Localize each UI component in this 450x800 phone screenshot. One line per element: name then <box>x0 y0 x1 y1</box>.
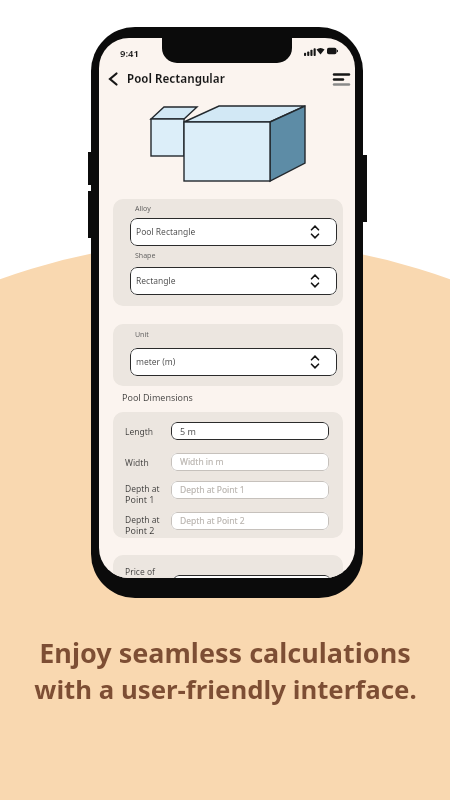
staticText: Pool Dimensions <box>122 391 193 403</box>
staticText: meter (m) <box>136 356 176 368</box>
staticText: with a user-friendly interface. <box>34 671 417 706</box>
staticText: Depth at <box>125 483 160 495</box>
staticText: Pool Rectangle <box>136 226 196 238</box>
staticText: 5 m <box>180 425 196 437</box>
button[interactable] <box>327 66 353 88</box>
button[interactable] <box>173 575 331 578</box>
staticText: Enjoy seamless calculations <box>39 634 411 671</box>
staticText: Width <box>125 457 149 469</box>
button[interactable]: meter (m) <box>130 348 337 376</box>
button[interactable] <box>103 66 125 88</box>
button[interactable]: Width in m <box>171 453 329 471</box>
staticText: Unit <box>135 330 149 340</box>
staticText: Price of <box>125 566 155 578</box>
staticText: Alloy <box>135 204 151 214</box>
staticText: Width in m <box>180 456 224 468</box>
button[interactable]: Pool Rectangular <box>127 71 225 87</box>
staticText: Depth at Point 1 <box>180 484 245 496</box>
staticText: Point 2 <box>125 524 155 536</box>
button[interactable]: Depth at Point 2 <box>171 512 329 530</box>
staticText: Depth at Point 2 <box>180 515 245 527</box>
staticText: Rectangle <box>136 275 176 287</box>
staticText: Point 1 <box>125 493 155 505</box>
staticText: Depth at <box>125 514 160 526</box>
button[interactable]: Depth at Point 1 <box>171 481 329 499</box>
staticText: Shape <box>135 251 156 261</box>
button[interactable]: Pool Rectangle <box>130 218 337 246</box>
staticText: 9:41 <box>120 47 139 60</box>
button[interactable]: Rectangle <box>130 267 337 295</box>
button[interactable]: 5 m <box>171 422 329 440</box>
staticText: Length <box>125 426 154 438</box>
